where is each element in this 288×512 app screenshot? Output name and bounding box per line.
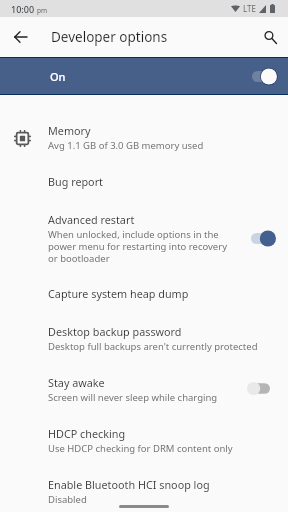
staticText: Developer options [51,28,168,46]
staticText: Desktop backup password [48,324,182,339]
button[interactable]: Desktop backup password [0,324,288,358]
button[interactable]: Advanced restart [0,212,288,272]
staticText: Disabled [48,493,87,506]
staticText: Screen will never sleep while charging [48,391,218,404]
staticText: LTE [243,3,256,14]
button[interactable]: Bug report [0,174,288,208]
button[interactable]: Stay awake [0,375,288,409]
button[interactable] [0,57,288,95]
staticText: 10:00 [11,3,35,15]
staticText: Enable Bluetooth HCI snoop log [48,477,210,492]
button[interactable]: Enable Bluetooth HCI snoop log [0,477,288,511]
button[interactable]: Memory [0,123,288,157]
staticText: Avg 1.1 GB of 3.0 GB memory used [48,139,204,152]
staticText: Stay awake [48,375,105,390]
staticText: Use HDCP checking for DRM content only [48,442,233,455]
button[interactable]: Capture system heap dump [0,286,288,320]
button[interactable]: HDCP checking [0,426,288,460]
button[interactable]: Back [8,17,32,57]
staticText: Capture system heap dump [48,286,189,301]
staticText: Memory [48,123,91,138]
staticText: pm [37,6,48,15]
staticText: Advanced restart [48,212,135,227]
staticText: Desktop full backups aren't currently pr… [48,340,258,353]
button[interactable]: Search [257,17,283,57]
staticText: HDCP checking [48,426,126,441]
staticText: On [50,69,66,84]
staticText: When unlocked, include options in the po… [48,228,227,265]
staticText: Bug report [48,174,103,189]
